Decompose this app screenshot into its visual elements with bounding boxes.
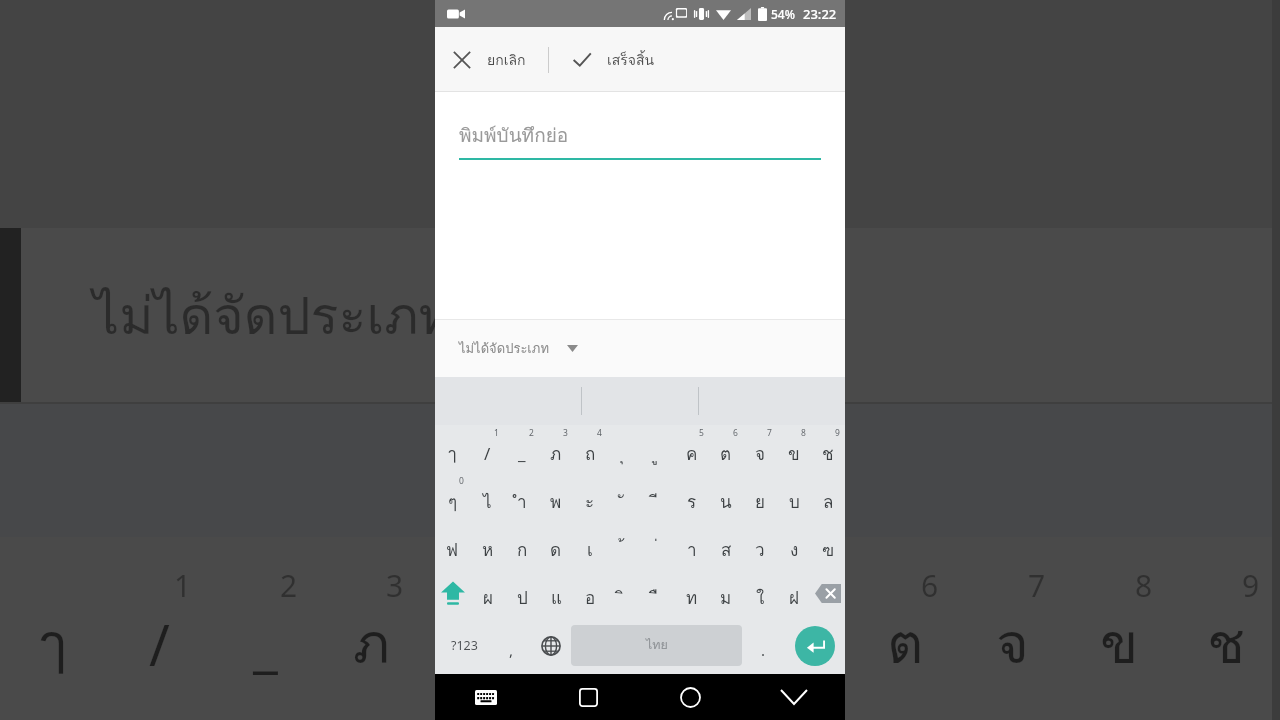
- staticText: 7: [1028, 565, 1046, 606]
- staticText: 4: [597, 427, 602, 439]
- button[interactable]: ป: [505, 569, 539, 617]
- button[interactable]: ฃ: [811, 521, 845, 569]
- button[interactable]: ไม่ได้จัดประเภท: [435, 319, 845, 377]
- button[interactable]: 6: [709, 425, 743, 473]
- staticText: ถ: [585, 440, 596, 467]
- button[interactable]: ิ: [607, 569, 641, 617]
- button[interactable]: ?123: [435, 617, 493, 674]
- button[interactable]: น: [709, 473, 743, 521]
- button[interactable]: ม: [709, 569, 743, 617]
- staticText: ฃ: [822, 536, 835, 563]
- button[interactable]: พิมพ์บันทึกย่อ: [459, 120, 821, 160]
- staticText: ม: [720, 584, 732, 611]
- staticText: 23:22: [803, 5, 837, 23]
- button[interactable]: Back: [742, 674, 845, 720]
- button[interactable]: Shift: [435, 569, 470, 617]
- button[interactable]: ไ: [470, 473, 505, 521]
- button[interactable]: ่: [641, 521, 675, 569]
- button[interactable]: Hide keyboard: [435, 674, 537, 720]
- staticText: บ: [789, 488, 800, 515]
- button[interactable]: ้: [607, 521, 641, 569]
- button[interactable]: บ: [777, 473, 811, 521]
- button[interactable]: ๅ: [435, 425, 470, 473]
- button[interactable]: 2: [505, 425, 539, 473]
- staticText: ข: [1100, 599, 1139, 688]
- button[interactable]: ว: [743, 521, 777, 569]
- button[interactable]: ื: [641, 569, 675, 617]
- staticText: 1: [174, 565, 192, 606]
- staticText: ก: [517, 536, 528, 563]
- button[interactable]: 9: [811, 425, 845, 473]
- button[interactable]: 4: [573, 425, 607, 473]
- button[interactable]: เสร็จสิ้น: [563, 41, 663, 79]
- staticText: 9: [835, 427, 840, 439]
- button[interactable]: ย: [743, 473, 777, 521]
- staticText: ช: [1207, 599, 1246, 688]
- button[interactable]: ส: [709, 521, 743, 569]
- staticText: 8: [1135, 565, 1153, 606]
- button[interactable]: ไทย: [571, 625, 742, 666]
- staticText: 8: [801, 427, 806, 439]
- staticText: ผ: [483, 584, 493, 611]
- button[interactable]: พ: [539, 473, 573, 521]
- staticText: ต: [720, 440, 732, 467]
- staticText: 6: [921, 565, 939, 606]
- button[interactable]: ะ: [573, 473, 607, 521]
- staticText: ด: [550, 536, 562, 563]
- staticText: ไม่ได้จัดประเภท: [93, 274, 453, 357]
- button[interactable]: เ: [573, 521, 607, 569]
- staticText: ง: [790, 536, 799, 563]
- button[interactable]: Enter: [795, 626, 835, 666]
- button[interactable]: Backspace: [811, 569, 845, 617]
- button[interactable]: ล: [811, 473, 845, 521]
- staticText: 54%: [771, 6, 795, 22]
- button[interactable]: ,: [493, 617, 530, 674]
- button[interactable]: ฝ: [777, 569, 811, 617]
- staticText: ,: [509, 640, 514, 660]
- staticText: 3: [386, 565, 404, 606]
- button[interactable]: ห: [470, 521, 505, 569]
- button[interactable]: ยกเลิก: [443, 41, 534, 79]
- button[interactable]: ู: [641, 425, 675, 473]
- button[interactable]: ั: [607, 473, 641, 521]
- staticText: 2: [280, 565, 298, 606]
- staticText: ร: [687, 488, 697, 515]
- button[interactable]: ฟ: [435, 521, 470, 569]
- staticText: น: [720, 488, 732, 515]
- button[interactable]: 3: [539, 425, 573, 473]
- button[interactable]: ำ: [505, 473, 539, 521]
- button[interactable]: Home: [639, 674, 742, 720]
- button[interactable]: ผ: [470, 569, 505, 617]
- button[interactable]: อ: [573, 569, 607, 617]
- button[interactable]: ด: [539, 521, 573, 569]
- staticText: ฝ: [789, 584, 799, 611]
- button[interactable]: 0: [435, 473, 470, 521]
- button[interactable]: 8: [777, 425, 811, 473]
- button[interactable]: ท: [675, 569, 709, 617]
- button[interactable]: Recents: [537, 674, 639, 720]
- staticText: ?123: [451, 637, 478, 654]
- staticText: 1: [494, 427, 499, 439]
- button[interactable]: ง: [777, 521, 811, 569]
- button[interactable]: ก: [505, 521, 539, 569]
- staticText: 2: [529, 427, 534, 439]
- button[interactable]: า: [675, 521, 709, 569]
- staticText: .: [761, 640, 766, 660]
- button[interactable]: 7: [743, 425, 777, 473]
- button[interactable]: ใ: [743, 569, 777, 617]
- staticText: ป: [517, 584, 528, 611]
- button[interactable]: 1: [470, 425, 505, 473]
- button[interactable]: ุ: [607, 425, 641, 473]
- staticText: จ: [996, 599, 1029, 688]
- staticText: 5: [699, 427, 704, 439]
- staticText: เ: [587, 536, 593, 563]
- button[interactable]: ี: [641, 473, 675, 521]
- button[interactable]: 5: [675, 425, 709, 473]
- button[interactable]: Change keyboard language: [530, 617, 571, 674]
- button[interactable]: .: [742, 617, 785, 674]
- staticText: อ: [585, 584, 596, 611]
- button[interactable]: ร: [675, 473, 709, 521]
- staticText: ท: [686, 584, 698, 611]
- button[interactable]: แ: [539, 569, 573, 617]
